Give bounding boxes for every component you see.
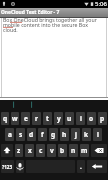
staticText: z <box>17 146 21 155</box>
button[interactable]: Shift <box>1 144 13 157</box>
staticText: . <box>80 162 82 171</box>
button[interactable]: d <box>27 128 36 141</box>
button[interactable]: l <box>93 128 102 141</box>
button[interactable]: w <box>11 112 19 125</box>
button[interactable]: z <box>15 144 23 157</box>
staticText: g <box>51 130 56 139</box>
staticText: OneCloud Text Editor - 7 <box>1 9 60 16</box>
staticText: s <box>19 130 23 139</box>
staticText: v <box>50 146 54 155</box>
staticText: f <box>41 130 44 139</box>
button[interactable]: Voice input <box>16 160 24 173</box>
button[interactable]: Backspace <box>91 144 107 157</box>
staticText: x <box>28 146 32 155</box>
button[interactable]: h <box>60 128 69 141</box>
button[interactable]: ?123 <box>1 160 14 173</box>
button[interactable]: n <box>69 144 78 157</box>
button[interactable]: p <box>98 112 107 125</box>
button[interactable]: f <box>38 128 47 141</box>
staticText: d <box>29 130 34 139</box>
staticText: c <box>39 146 43 155</box>
button[interactable]: q <box>1 112 9 125</box>
button[interactable]: e <box>21 112 30 125</box>
staticText: l <box>97 130 99 139</box>
staticText: a <box>8 130 12 139</box>
staticText: y <box>57 114 61 123</box>
staticText: r <box>35 114 38 123</box>
button[interactable]: t <box>43 112 52 125</box>
staticText: m <box>81 146 88 155</box>
button[interactable]: k <box>82 128 91 141</box>
button[interactable]: x <box>25 144 34 157</box>
staticText: j <box>75 130 77 139</box>
staticText: ?123 <box>2 164 13 170</box>
button[interactable]: Enter <box>87 160 107 173</box>
staticText: w <box>12 114 18 123</box>
staticText: p <box>100 114 105 123</box>
button[interactable]: s <box>16 128 25 141</box>
button[interactable]: a <box>5 128 14 141</box>
staticText: 5:06 <box>95 0 107 8</box>
staticText: n <box>71 146 76 155</box>
staticText: o <box>89 114 94 123</box>
button[interactable]: i <box>76 112 85 125</box>
staticText: t <box>46 114 49 123</box>
button[interactable]: o <box>87 112 96 125</box>
staticText: i <box>80 114 82 123</box>
staticText: u <box>67 114 72 123</box>
button[interactable]: v <box>47 144 56 157</box>
staticText: k <box>84 130 89 139</box>
button[interactable]: b <box>58 144 67 157</box>
staticText: q <box>3 114 8 123</box>
button[interactable]: u <box>65 112 74 125</box>
staticText: e <box>24 114 28 123</box>
staticText: h <box>62 130 67 139</box>
button[interactable]: c <box>36 144 45 157</box>
staticText: b <box>60 146 65 155</box>
button[interactable]: . <box>77 160 85 173</box>
staticText: Box OneCloud brings together all your mo… <box>3 16 97 33</box>
button[interactable]: g <box>49 128 58 141</box>
button[interactable]: y <box>54 112 63 125</box>
button[interactable]: r <box>32 112 41 125</box>
button[interactable]: m <box>80 144 89 157</box>
button[interactable]: j <box>71 128 80 141</box>
